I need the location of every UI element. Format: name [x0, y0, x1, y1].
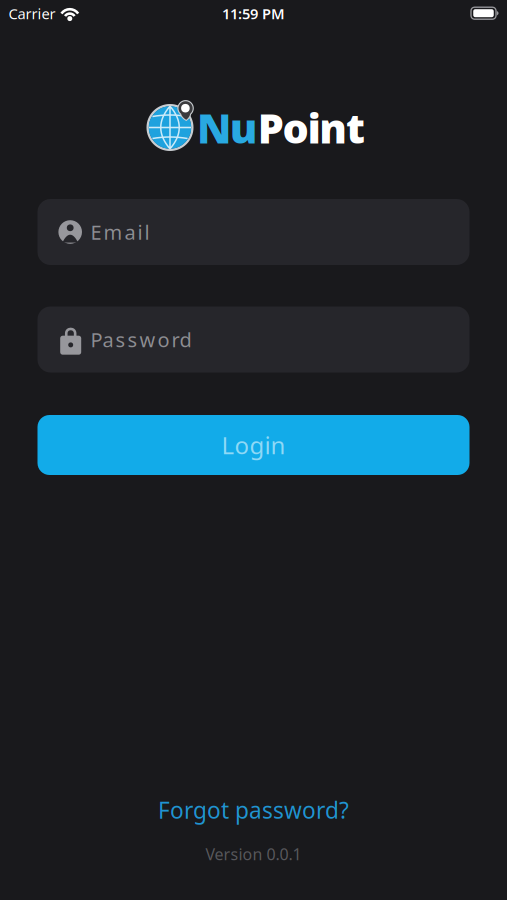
- staticText: Login: [221, 429, 285, 461]
- staticText: Pa s s w o rd: [90, 326, 191, 353]
- staticText: Forgot password?: [158, 795, 349, 825]
- button[interactable]: Login: [37, 415, 469, 475]
- button[interactable]: Password: [37, 306, 469, 372]
- button[interactable]: Email: [37, 199, 469, 265]
- staticText: Carrier: [8, 4, 55, 23]
- staticText: 11:59 PM: [222, 4, 285, 23]
- staticText: Version 0.0.1: [205, 843, 301, 865]
- staticText: Nu: [197, 100, 258, 155]
- button[interactable]: Forgot password?: [158, 795, 349, 825]
- staticText: Point: [258, 100, 365, 155]
- staticText: E m a i l: [90, 219, 149, 245]
